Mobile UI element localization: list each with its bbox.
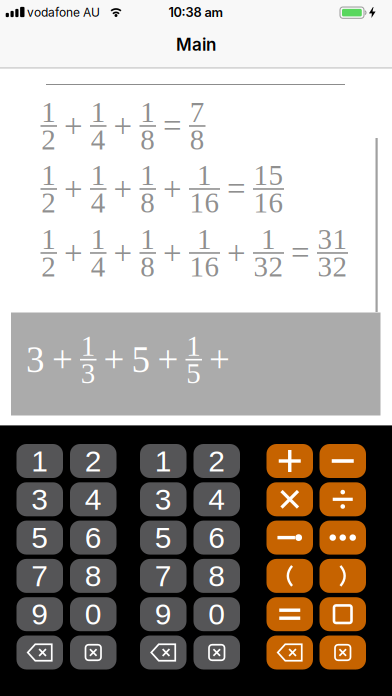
staticText: 7 [31,559,48,593]
staticText: + [209,339,230,380]
button[interactable] [266,444,313,478]
staticText: + [64,108,83,144]
button[interactable]: 2 [193,444,240,478]
button[interactable] [70,635,116,669]
staticText: 5 [131,339,150,380]
staticText: 16 [253,187,283,219]
staticText: 9 [155,597,172,631]
staticText: + [103,339,124,380]
button[interactable]: 7 [140,559,186,593]
staticText: 1 [41,223,56,255]
staticText: 1 [31,444,48,478]
staticText: 3 [81,357,96,389]
staticText: 1 [91,96,106,128]
staticText: vodafone AU [27,5,100,19]
staticText: 1 [155,444,172,478]
staticText: + [64,235,83,271]
staticText: 9 [31,597,48,631]
button[interactable]: 6 [70,521,116,555]
button[interactable] [266,635,313,669]
button[interactable]: 6 [193,521,240,555]
staticText: + [163,171,182,207]
button[interactable]: 3 [140,482,186,516]
staticText: 2 [41,251,56,283]
button[interactable]: 0 [70,597,116,631]
button[interactable] [266,482,313,516]
button[interactable] [319,597,366,631]
button[interactable] [319,559,366,593]
staticText: 4 [91,187,106,219]
staticText: + [163,235,182,271]
button[interactable] [16,635,63,669]
button[interactable] [266,521,313,555]
staticText: 6 [85,521,102,554]
staticText: 2 [41,124,56,156]
button[interactable] [319,635,366,669]
staticText: 1 [41,96,56,128]
button[interactable]: 1 [16,444,63,478]
button[interactable]: 1 [140,444,186,478]
staticText: 5 [31,521,48,554]
staticText: = [291,235,310,271]
staticText: 4 [91,124,106,156]
button[interactable]: 2 [70,444,116,478]
staticText: 8 [140,187,155,219]
staticText: 4 [91,251,106,283]
button[interactable] [319,482,366,516]
staticText: 5 [155,521,172,554]
staticText: = [163,108,182,144]
button[interactable] [193,635,240,669]
button[interactable] [319,444,366,478]
staticText: 2 [85,444,102,478]
staticText: 16 [189,251,219,283]
button[interactable]: 3 [16,482,63,516]
staticText: 6 [208,521,225,554]
staticText: + [113,171,132,207]
staticText: 2 [208,444,225,478]
staticText: 0 [208,597,225,631]
staticText: + [227,235,246,271]
staticText: 4 [208,482,225,516]
button[interactable] [266,559,313,593]
staticText: 1 [81,330,96,362]
button[interactable] [266,597,313,631]
button[interactable] [140,635,186,669]
staticText: 1 [197,223,212,255]
staticText: 32 [253,251,283,283]
staticText: 2 [41,187,56,219]
staticText: 5 [186,357,201,389]
button[interactable]: 9 [140,597,186,631]
staticText: 7 [190,96,205,128]
button[interactable]: 9 [16,597,63,631]
staticText: + [64,171,83,207]
staticText: 1 [140,223,155,255]
button[interactable]: 8 [193,559,240,593]
button[interactable]: 5 [140,521,186,555]
staticText: + [113,235,132,271]
staticText: = [227,171,246,207]
button[interactable]: 4 [193,482,240,516]
staticText: 4 [85,482,102,516]
staticText: + [157,339,178,380]
button[interactable]: 5 [16,521,63,555]
staticText: 1 [197,159,212,191]
button[interactable]: 7 [16,559,63,593]
staticText: 1 [140,96,155,128]
button[interactable]: 8 [70,559,116,593]
staticText: 3 [31,482,48,516]
staticText: 8 [208,559,225,593]
staticText: 16 [189,187,219,219]
button[interactable] [319,521,366,555]
staticText: 1 [140,159,155,191]
staticText: 8 [190,124,205,156]
staticText: 0 [85,597,102,631]
staticText: 7 [155,559,172,593]
staticText: 8 [140,251,155,283]
staticText: 31 [317,223,347,255]
staticText: 8 [85,559,102,593]
staticText: + [113,108,132,144]
button[interactable]: 4 [70,482,116,516]
button[interactable]: 0 [193,597,240,631]
staticText: 10:38 am [168,5,223,20]
staticText: + [52,339,73,380]
